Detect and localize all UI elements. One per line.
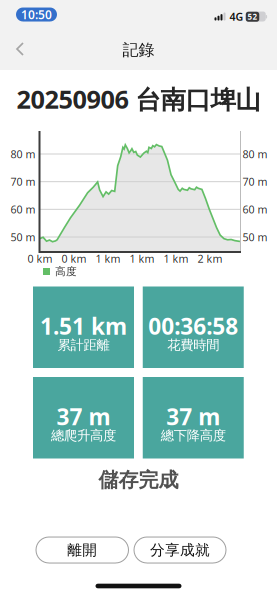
staticText: 花費時間 [167,337,219,353]
staticText: 總下降高度 [161,427,226,444]
staticText: 80 m [242,147,267,161]
staticText: 50 m [242,230,267,244]
staticText: 60 m [242,202,267,216]
staticText: 0 km [27,251,52,266]
staticText: 0 km [61,251,86,266]
staticText: 50 m [10,230,35,244]
staticText: 70 m [242,175,267,189]
staticText: 儲存完成 [98,468,178,492]
staticText: 離開 [67,541,97,559]
staticText: 4G [229,9,243,24]
staticText: 總爬升高度 [51,427,116,444]
button[interactable]: 離開 [36,537,128,563]
staticText: 累計距離 [57,337,109,353]
button[interactable]: 分享成就 [134,537,226,563]
staticText: 高度 [55,265,77,278]
staticText: 10:50 [21,6,52,22]
button[interactable] [15,42,24,56]
staticText: 1.51 km [40,311,127,341]
staticText: 52 [247,11,257,22]
staticText: 00:36:58 [148,311,238,341]
staticText: 70 m [10,175,35,189]
staticText: 分享成就 [150,541,210,559]
staticText: 37 m [56,401,110,431]
staticText: 1 km [129,251,154,266]
staticText: 60 m [10,202,35,216]
staticText: 37 m [166,401,220,431]
staticText: 20250906 台南口埤山 [16,82,260,116]
staticText: 2 km [197,251,222,266]
staticText: 80 m [10,147,35,161]
staticText: 1 km [95,251,120,266]
staticText: 1 km [163,251,188,266]
staticText: 記錄 [122,40,154,60]
